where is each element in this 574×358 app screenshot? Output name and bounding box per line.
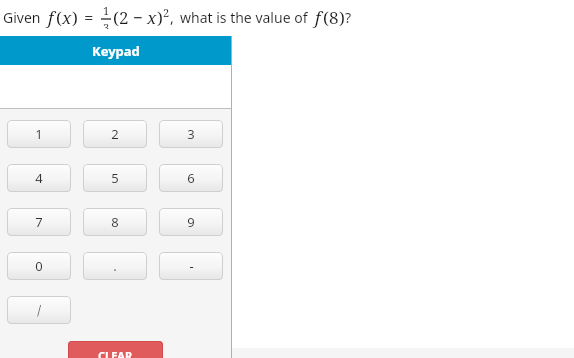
staticText: 1 bbox=[103, 3, 110, 18]
staticText: / bbox=[37, 301, 41, 319]
staticText: 0 bbox=[35, 257, 43, 275]
button[interactable]: 5 bbox=[83, 164, 147, 192]
staticText: . bbox=[113, 257, 117, 275]
staticText: 1 bbox=[35, 125, 43, 143]
staticText: 2 bbox=[163, 5, 170, 20]
staticText: 8 bbox=[111, 213, 119, 231]
button[interactable]: Clear bbox=[68, 341, 163, 358]
button[interactable]: - bbox=[159, 252, 223, 280]
staticText: − bbox=[133, 6, 143, 29]
button[interactable]: / bbox=[7, 296, 71, 324]
button[interactable] bbox=[0, 65, 232, 109]
button[interactable]: Keypad bbox=[0, 36, 232, 65]
staticText: 9 bbox=[187, 213, 195, 231]
staticText: 8 bbox=[329, 6, 339, 29]
staticText: what is the value of bbox=[180, 8, 312, 27]
staticText: f bbox=[48, 6, 54, 29]
button[interactable]: 8 bbox=[83, 208, 147, 236]
staticText: ( bbox=[56, 6, 62, 29]
staticText: - bbox=[189, 257, 194, 275]
staticText: ( bbox=[113, 6, 119, 29]
staticText: ? bbox=[345, 8, 352, 27]
staticText: f bbox=[315, 6, 321, 29]
button[interactable]: 9 bbox=[159, 208, 223, 236]
staticText: 2 bbox=[111, 125, 119, 143]
staticText: 5 bbox=[111, 169, 119, 187]
button[interactable]: 6 bbox=[159, 164, 223, 192]
staticText: ) bbox=[157, 6, 163, 29]
staticText: 6 bbox=[187, 169, 195, 187]
button[interactable]: 3 bbox=[159, 120, 223, 148]
staticText: x bbox=[147, 6, 157, 29]
staticText: 3 bbox=[103, 20, 110, 29]
staticText: 7 bbox=[35, 213, 43, 231]
button[interactable]: 7 bbox=[7, 208, 71, 236]
staticText: CLEAR bbox=[98, 348, 133, 358]
staticText: , bbox=[170, 8, 178, 27]
button[interactable]: 1 bbox=[7, 120, 71, 148]
staticText: Keypad bbox=[92, 42, 140, 60]
staticText: ( bbox=[323, 6, 329, 29]
staticText: ) bbox=[72, 6, 78, 29]
button[interactable]: 0 bbox=[7, 252, 71, 280]
staticText: = bbox=[84, 6, 94, 29]
staticText: x bbox=[62, 6, 72, 29]
staticText: 4 bbox=[35, 169, 43, 187]
button[interactable]: 2 bbox=[83, 120, 147, 148]
staticText: 3 bbox=[187, 125, 195, 143]
button[interactable]: 4 bbox=[7, 164, 71, 192]
staticText: 2 bbox=[119, 6, 129, 29]
staticText: ) bbox=[339, 6, 345, 29]
staticText: Given bbox=[3, 8, 45, 27]
button[interactable]: . bbox=[83, 252, 147, 280]
